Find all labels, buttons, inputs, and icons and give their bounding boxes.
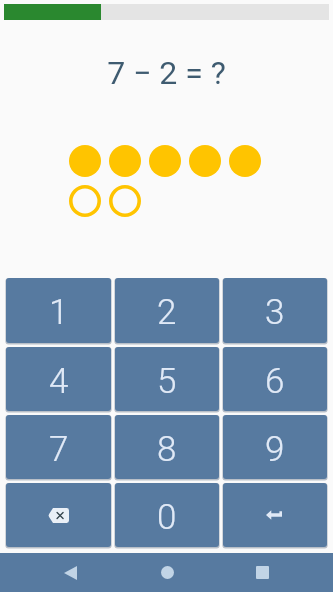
button[interactable]: 6 xyxy=(223,347,327,411)
button[interactable]: 8 xyxy=(115,415,219,479)
button[interactable]: 5 xyxy=(115,347,219,411)
button[interactable]: Enter xyxy=(223,483,327,547)
button[interactable]: 9 xyxy=(223,415,327,479)
staticText: 5 xyxy=(157,361,177,402)
button[interactable]: Backspace xyxy=(6,483,111,547)
button[interactable]: 4 xyxy=(6,347,111,411)
staticText: 3 xyxy=(265,292,285,333)
button[interactable]: 0 xyxy=(115,483,219,547)
staticText: 4 xyxy=(49,361,69,402)
staticText: 9 xyxy=(265,429,285,470)
staticText: 7 xyxy=(49,429,69,470)
button[interactable]: Recents xyxy=(242,553,282,592)
button[interactable]: 7 xyxy=(6,415,111,479)
staticText: 7 − 2 = ? xyxy=(107,54,226,92)
button[interactable]: Back xyxy=(50,553,90,592)
button[interactable]: 2 xyxy=(115,278,219,343)
staticText: 1 xyxy=(49,292,69,333)
staticText: 6 xyxy=(265,361,285,402)
staticText: 8 xyxy=(157,429,177,470)
staticText: 2 xyxy=(157,292,177,333)
button[interactable]: 3 xyxy=(223,278,327,343)
button[interactable]: Home xyxy=(147,553,187,592)
staticText: 0 xyxy=(157,497,177,538)
button[interactable]: 1 xyxy=(6,278,111,343)
